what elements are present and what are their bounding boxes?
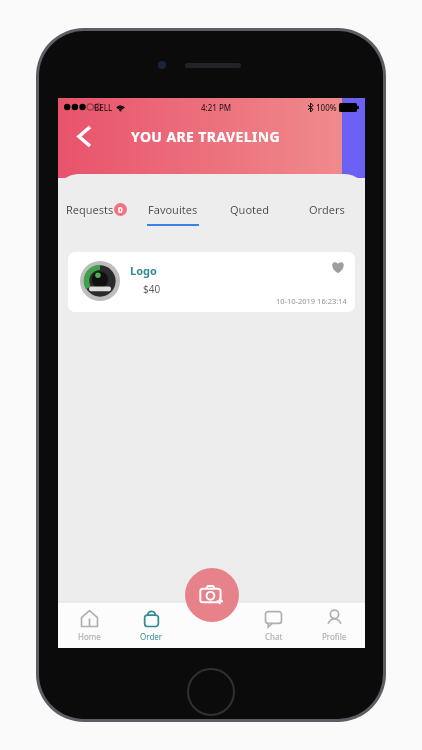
button[interactable]: Logo: [68, 252, 355, 312]
staticText: 0: [118, 204, 123, 215]
button[interactable]: Home: [58, 602, 120, 648]
button[interactable]: Requests: [58, 202, 134, 236]
staticText: Home: [78, 631, 101, 642]
button[interactable]: Back: [66, 118, 102, 154]
button[interactable]: Profile: [304, 602, 365, 648]
staticText: 100%: [316, 102, 337, 113]
staticText: Chat: [265, 631, 283, 642]
button[interactable]: Favourite: [329, 258, 347, 276]
button[interactable]: Order: [120, 602, 182, 648]
staticText: Profile: [322, 631, 347, 642]
staticText: 4:21 PM: [201, 102, 232, 113]
staticText: Requests: [66, 202, 114, 217]
staticText: Order: [140, 631, 163, 642]
staticText: BELL: [94, 102, 113, 113]
button[interactable]: Chat: [243, 602, 304, 648]
staticText: 10-10-2019 16:23:14: [276, 296, 347, 306]
button[interactable]: Favouites: [134, 202, 211, 236]
button[interactable]: Quoted: [211, 202, 288, 236]
staticText: Quoted: [230, 202, 269, 217]
staticText: Favouites: [148, 202, 198, 217]
staticText: Orders: [309, 202, 345, 217]
button[interactable]: Orders: [288, 202, 365, 236]
staticText: $40: [143, 282, 161, 296]
staticText: YOU ARE TRAVELING: [131, 127, 281, 146]
staticText: Logo: [130, 263, 157, 278]
button[interactable]: Add photo: [185, 568, 239, 622]
